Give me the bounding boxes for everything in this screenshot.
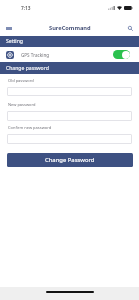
button[interactable]: Menu xyxy=(1,21,17,35)
button[interactable]: Change Password xyxy=(7,153,133,167)
button[interactable] xyxy=(7,134,132,144)
button[interactable] xyxy=(7,87,132,96)
staticText: SureCommand xyxy=(49,24,91,32)
staticText: Confirm new password xyxy=(8,125,52,130)
staticText: Old password xyxy=(8,78,34,83)
button[interactable]: Search xyxy=(122,21,138,35)
button[interactable] xyxy=(7,111,132,121)
staticText: 7:13 xyxy=(21,5,31,12)
staticText: Change Password xyxy=(45,156,95,164)
staticText: GPS Tracking xyxy=(21,52,50,58)
button[interactable]: GPS Tracking xyxy=(0,47,139,62)
staticText: Setting xyxy=(6,38,23,45)
staticText: Change password xyxy=(6,65,49,72)
staticText: New password xyxy=(8,102,36,107)
